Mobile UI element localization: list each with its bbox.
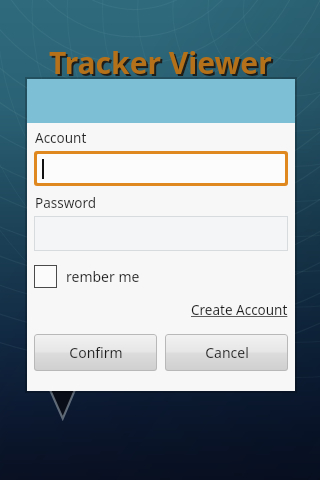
- button[interactable]: [37, 154, 285, 183]
- staticText: Account: [35, 129, 87, 147]
- button[interactable]: Create Account: [191, 301, 288, 319]
- button[interactable]: Confirm: [34, 334, 157, 371]
- staticText: Tracker Viewer: [49, 42, 272, 83]
- staticText: Cancel: [205, 343, 249, 362]
- button[interactable]: Cancel: [165, 334, 288, 371]
- staticText: rember me: [66, 267, 140, 286]
- staticText: Confirm: [69, 343, 123, 362]
- staticText: Password: [35, 194, 97, 212]
- button[interactable]: rember me: [34, 265, 140, 288]
- button[interactable]: [34, 216, 288, 251]
- staticText: Tracker Viewer: [51, 44, 274, 85]
